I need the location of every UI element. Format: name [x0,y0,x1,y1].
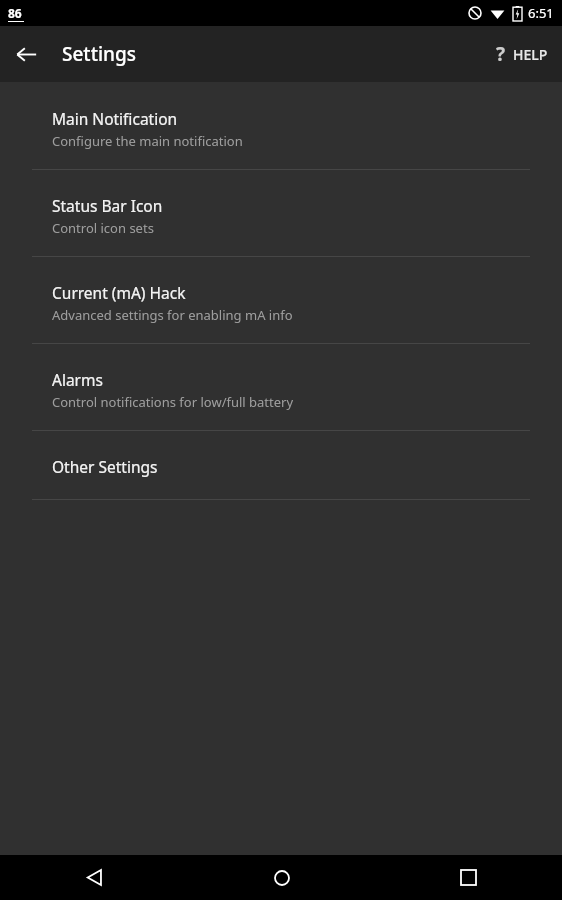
button[interactable]: Alarms [0,369,562,430]
button[interactable]: Recent apps [375,855,562,900]
staticText: Control notifications for low/full batte… [52,393,294,411]
button[interactable]: ? [482,31,562,77]
button[interactable]: Main Notification [0,108,562,169]
staticText: Control icon sets [52,219,154,237]
staticText: Alarms [52,369,103,390]
staticText: Main Notification [52,108,178,129]
staticText: Current (mA) Hack [52,282,186,303]
button[interactable]: Home [188,855,375,900]
staticText: Status Bar Icon [52,195,163,216]
button[interactable]: Back [0,855,188,900]
button[interactable]: Status Bar Icon [0,195,562,256]
staticText: HELP [513,45,548,64]
button[interactable]: Other Settings [0,456,562,499]
staticText: Advanced settings for enabling mA info [52,306,293,324]
staticText: Configure the main notification [52,132,243,150]
staticText: Other Settings [52,456,158,477]
staticText: ? [496,41,506,67]
staticText: 6:51 [528,4,554,22]
staticText: Settings [62,41,136,67]
staticText: 86 [8,5,22,21]
button[interactable]: Current (mA) Hack [0,282,562,343]
button[interactable]: Back [0,36,45,73]
